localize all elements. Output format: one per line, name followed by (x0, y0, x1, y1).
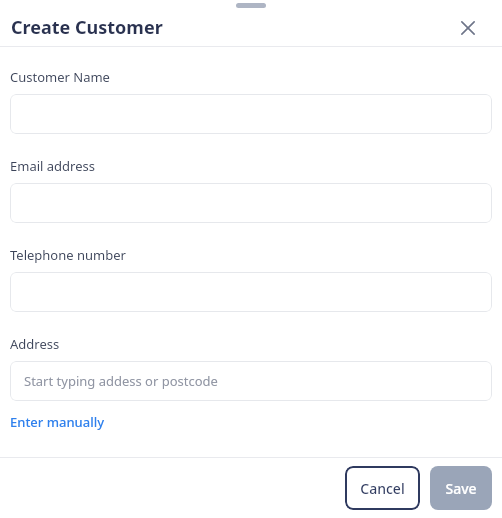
button[interactable] (10, 272, 492, 312)
staticText: Email address (10, 157, 95, 175)
staticText: Customer Name (10, 68, 110, 86)
button[interactable] (10, 183, 492, 223)
staticText: Enter manually (10, 413, 105, 431)
staticText: Save (445, 479, 477, 498)
staticText: Address (10, 335, 60, 353)
staticText: Create Customer (11, 15, 163, 40)
staticText: Telephone number (10, 246, 126, 264)
button[interactable]: Start typing addess or postcode (10, 361, 492, 401)
staticText: Cancel (360, 479, 405, 498)
button[interactable]: Enter manually (10, 413, 105, 431)
button[interactable]: Cancel (345, 466, 420, 510)
button[interactable]: Save (430, 466, 492, 510)
staticText: Start typing addess or postcode (24, 372, 218, 390)
button[interactable] (10, 94, 492, 134)
button[interactable]: Close (448, 9, 488, 46)
